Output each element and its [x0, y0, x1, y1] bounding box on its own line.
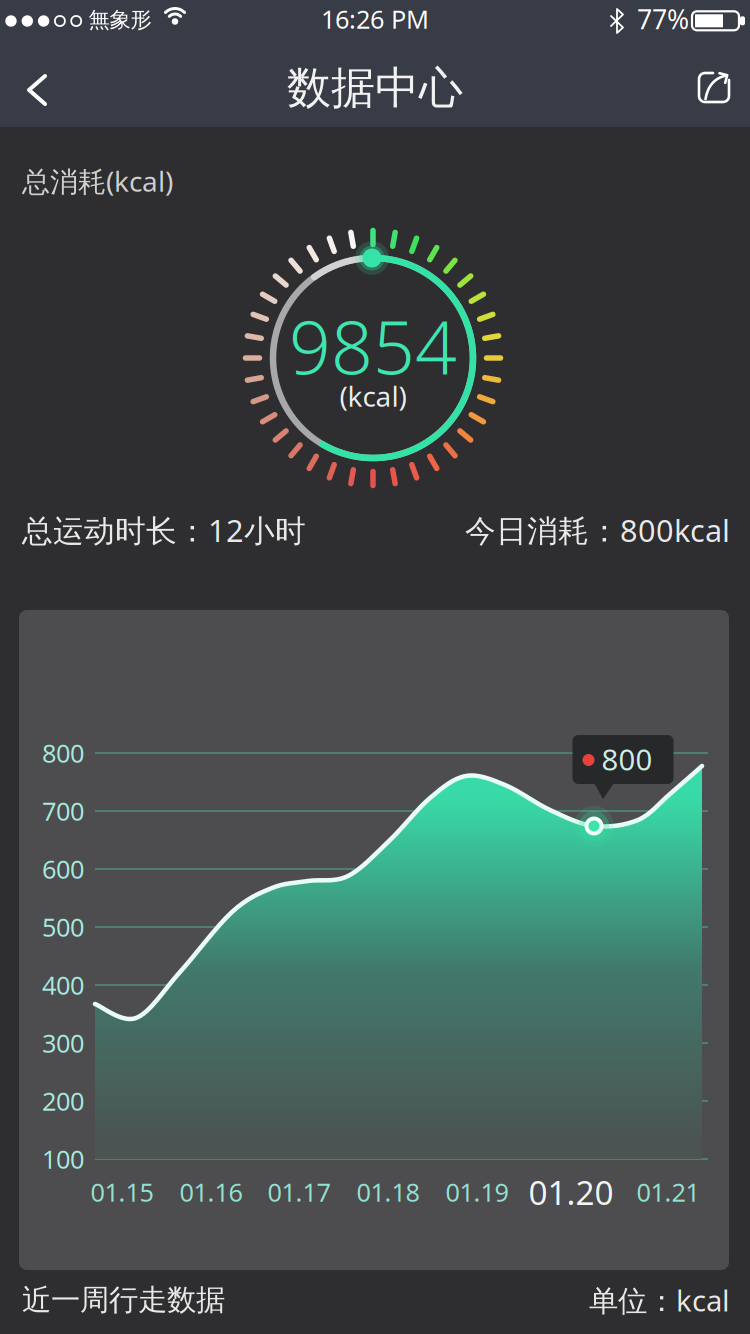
staticText: 01.18 — [356, 1175, 419, 1209]
staticText: 16:26 PM — [321, 2, 429, 36]
staticText: 300 — [42, 1026, 84, 1060]
staticText: 77% — [637, 1, 689, 37]
staticText: 01.17 — [267, 1175, 330, 1209]
staticText: 数据中心 — [287, 61, 463, 115]
staticText: 700 — [42, 794, 84, 828]
staticText: 500 — [42, 910, 84, 944]
staticText: 01.20 — [528, 1170, 613, 1214]
staticText: 01.15 — [90, 1175, 153, 1209]
staticText: 01.16 — [179, 1175, 242, 1209]
staticText: 今日消耗：800kcal — [465, 510, 730, 550]
staticText: 01.19 — [445, 1175, 508, 1209]
button[interactable]: Back — [27, 74, 47, 106]
staticText: 总消耗(kcal) — [22, 162, 173, 200]
staticText: 200 — [42, 1084, 84, 1118]
staticText: 800 — [601, 739, 652, 778]
staticText: 单位：kcal — [589, 1280, 730, 1319]
staticText: 9854 — [289, 297, 457, 395]
staticText: 400 — [42, 968, 84, 1002]
button[interactable]: Share — [696, 70, 732, 106]
staticText: 近一周行走数据 — [22, 1282, 225, 1318]
staticText: 無象形 — [88, 7, 151, 33]
staticText: (kcal) — [339, 377, 406, 415]
staticText: 100 — [42, 1142, 84, 1176]
staticText: 600 — [42, 852, 84, 886]
staticText: 800 — [42, 736, 84, 770]
staticText: 总运动时长：12小时 — [22, 510, 306, 550]
staticText: 01.21 — [636, 1175, 699, 1209]
